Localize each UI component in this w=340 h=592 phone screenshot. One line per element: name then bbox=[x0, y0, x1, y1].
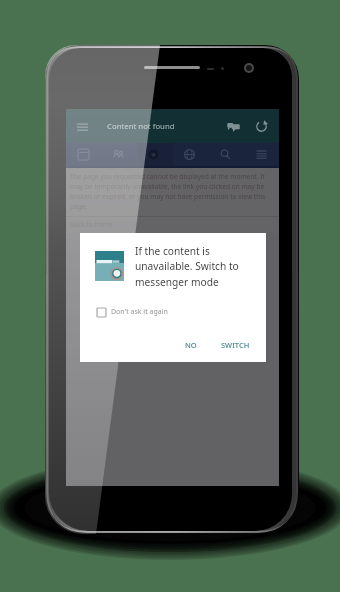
button[interactable]: Discover bbox=[171, 143, 207, 166]
staticText: Don't ask it again bbox=[111, 307, 168, 317]
button[interactable]: Refresh bbox=[255, 120, 268, 133]
button[interactable]: Back to home bbox=[66, 217, 279, 233]
button[interactable]: Search bbox=[207, 143, 243, 166]
staticText: If the content is unavailable. Switch to… bbox=[135, 244, 239, 289]
button[interactable]: Messages bbox=[227, 120, 240, 133]
button[interactable]: Menu bbox=[77, 121, 88, 132]
button[interactable]: SWITCH bbox=[215, 336, 256, 354]
button[interactable]: Don't ask it again bbox=[93, 303, 172, 321]
button[interactable]: Groups bbox=[136, 143, 171, 166]
button[interactable]: Friends bbox=[101, 143, 136, 166]
staticText: The page you requested cannot be display… bbox=[70, 172, 275, 210]
staticText: NO bbox=[185, 340, 197, 350]
staticText: SWITCH bbox=[221, 340, 250, 350]
button[interactable]: Feed bbox=[66, 143, 101, 166]
staticText: Content not found bbox=[107, 121, 175, 132]
button[interactable]: NO bbox=[179, 336, 203, 354]
staticText: Back to home bbox=[70, 220, 113, 229]
button[interactable]: Menu bbox=[243, 143, 279, 166]
